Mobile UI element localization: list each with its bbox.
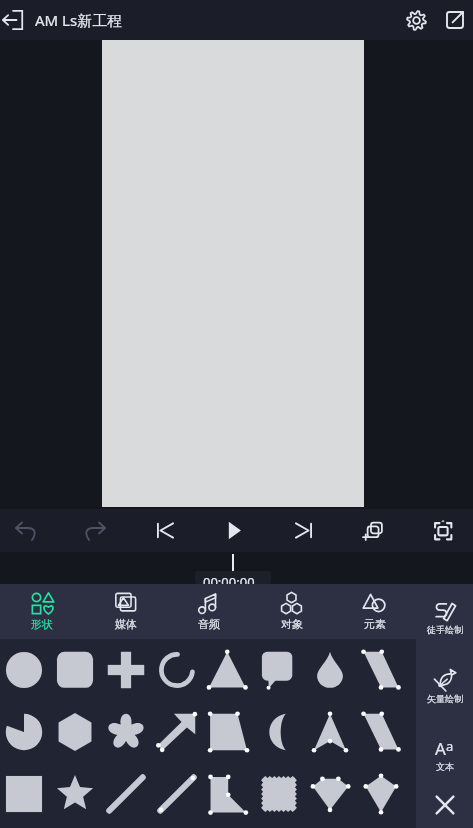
button[interactable]: Skip to end bbox=[269, 509, 338, 552]
button[interactable]: A bbox=[416, 734, 473, 774]
button[interactable]: Shape 22 bbox=[253, 763, 304, 825]
button[interactable]: Duplicate bbox=[339, 509, 408, 552]
button[interactable]: Shape 14 bbox=[253, 701, 304, 763]
button[interactable]: Shape 4 bbox=[151, 639, 202, 701]
button[interactable]: Skip to start bbox=[131, 509, 200, 552]
button[interactable]: Export bbox=[436, 0, 473, 40]
button[interactable]: Shape 1 bbox=[0, 639, 49, 701]
button[interactable]: Settings bbox=[397, 0, 436, 40]
button[interactable]: Back bbox=[0, 0, 25, 40]
button[interactable]: Shape 2 bbox=[49, 639, 100, 701]
button[interactable]: 元素 bbox=[333, 584, 416, 639]
staticText: 元素 bbox=[364, 617, 386, 631]
button[interactable]: Shape 7 bbox=[304, 639, 355, 701]
button[interactable]: Shape 12 bbox=[151, 701, 202, 763]
button[interactable]: Shape 15 bbox=[304, 701, 355, 763]
button[interactable]: Shape 18 bbox=[49, 763, 100, 825]
staticText: A bbox=[435, 737, 446, 760]
staticText: a bbox=[446, 737, 454, 755]
button[interactable]: Shape 19 bbox=[100, 763, 151, 825]
button[interactable]: Shape 3 bbox=[100, 639, 151, 701]
button[interactable]: Shape 10 bbox=[49, 701, 100, 763]
button[interactable]: Shape 13 bbox=[202, 701, 253, 763]
staticText: 文本 bbox=[436, 761, 454, 772]
button[interactable]: Shape 21 bbox=[202, 763, 253, 825]
button[interactable]: Shape 5 bbox=[202, 639, 253, 701]
staticText: AM Ls新工程 bbox=[35, 10, 123, 30]
button[interactable]: Redo bbox=[60, 509, 129, 552]
button[interactable]: Fit to screen bbox=[408, 509, 473, 552]
staticText: 00:00:00 bbox=[203, 573, 255, 591]
button[interactable]: Shape 9 bbox=[0, 701, 49, 763]
staticText: 矢量绘制 bbox=[427, 693, 463, 704]
button[interactable]: 音频 bbox=[167, 584, 250, 639]
button[interactable]: Play bbox=[200, 509, 269, 552]
button[interactable]: Shape 24 bbox=[355, 763, 406, 825]
staticText: 形状 bbox=[31, 617, 53, 631]
staticText: 音频 bbox=[198, 617, 220, 631]
button[interactable]: 徒手绘制 bbox=[416, 597, 473, 637]
button[interactable]: 矢量绘制 bbox=[416, 666, 473, 706]
staticText: 媒体 bbox=[115, 617, 137, 631]
button[interactable]: Shape 11 bbox=[100, 701, 151, 763]
staticText: 徒手绘制 bbox=[427, 624, 463, 635]
button[interactable]: 媒体 bbox=[84, 584, 167, 639]
button[interactable]: Shape 23 bbox=[304, 763, 355, 825]
button[interactable]: 对象 bbox=[250, 584, 333, 639]
button[interactable]: Shape 6 bbox=[253, 639, 304, 701]
button[interactable]: Shape 17 bbox=[0, 763, 49, 825]
button[interactable]: Close bbox=[416, 781, 473, 828]
button[interactable]: 形状 bbox=[0, 584, 84, 639]
button[interactable]: Shape 20 bbox=[151, 763, 202, 825]
button[interactable]: Undo bbox=[0, 509, 61, 552]
staticText: 对象 bbox=[281, 617, 303, 631]
button[interactable]: Shape 16 bbox=[355, 701, 406, 763]
button[interactable]: Shape 8 bbox=[355, 639, 406, 701]
